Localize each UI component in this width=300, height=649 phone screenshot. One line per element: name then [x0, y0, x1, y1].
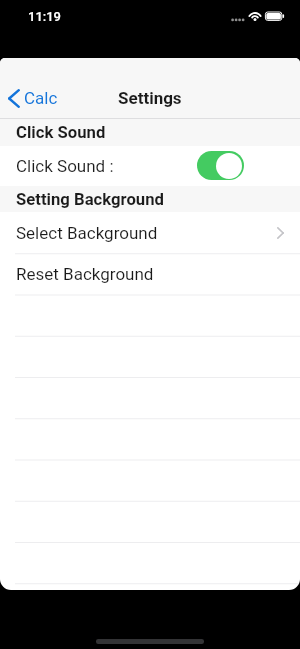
staticText: 11:19 [28, 9, 62, 24]
staticText: Reset Background [16, 264, 154, 284]
staticText: Settings [118, 88, 182, 108]
staticText: Select Background [16, 223, 158, 243]
button[interactable]: Calc [0, 84, 64, 108]
button[interactable]: Toggle click sound [197, 151, 244, 180]
button[interactable]: Reset Background [0, 253, 300, 294]
staticText: Click Sound : [16, 156, 114, 176]
staticText: Calc [24, 88, 58, 108]
staticText: Setting Background [16, 190, 164, 210]
button[interactable]: Select Background [0, 212, 300, 253]
button[interactable]: Click Sound : [0, 145, 300, 186]
staticText: Click Sound [16, 123, 106, 143]
